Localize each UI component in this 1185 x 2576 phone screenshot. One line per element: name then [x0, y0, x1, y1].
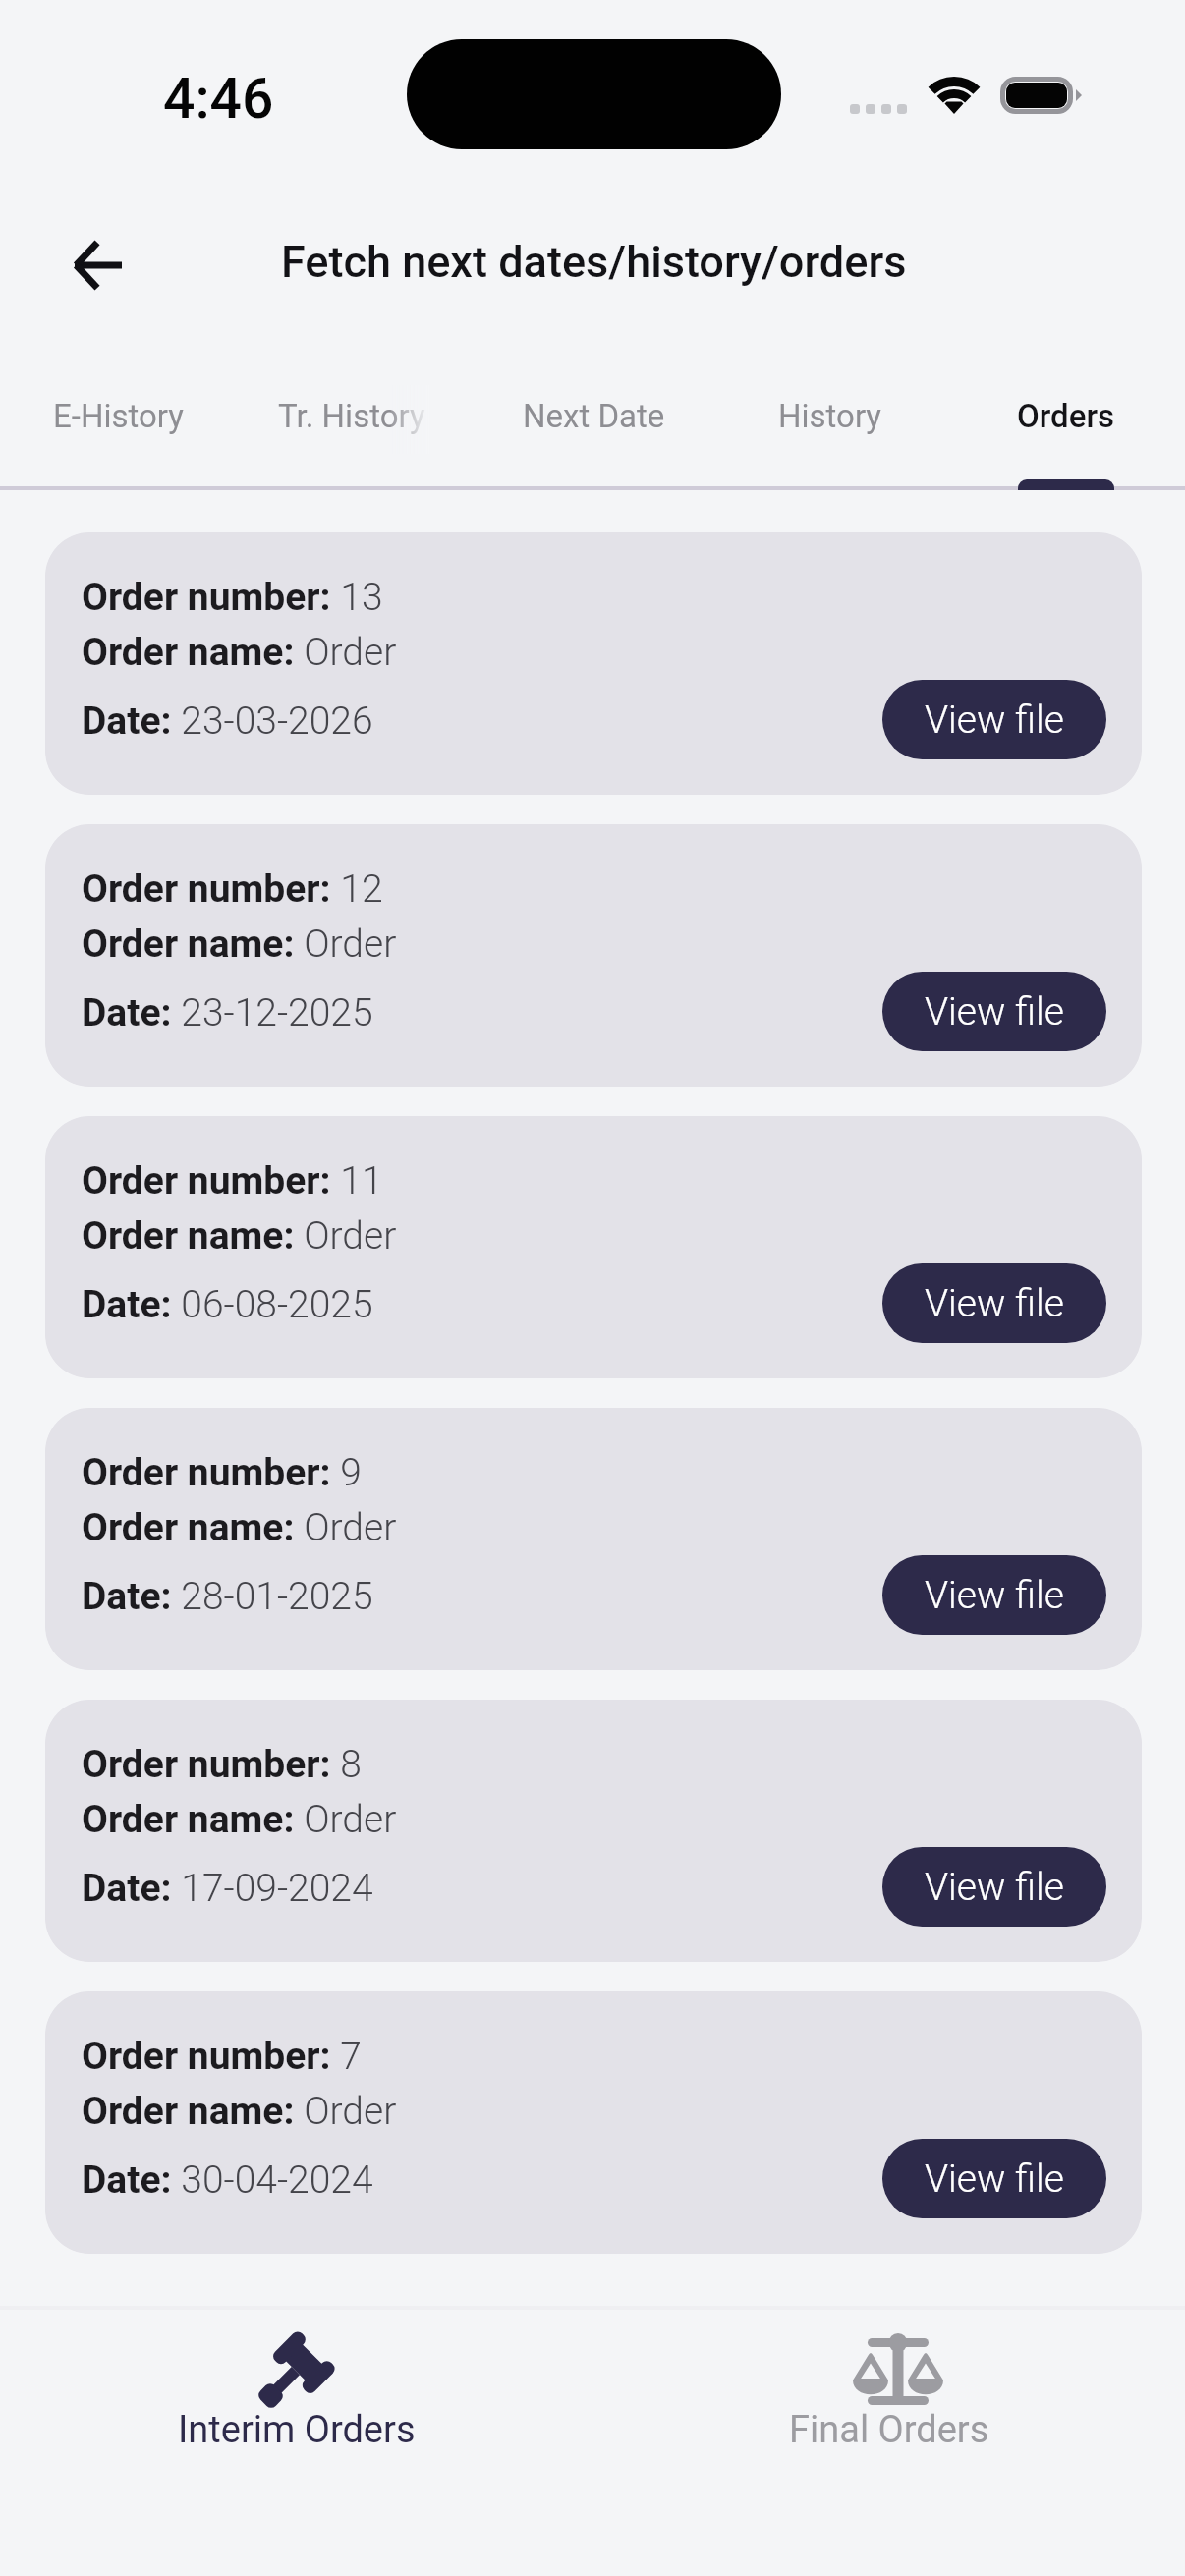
button[interactable]: Order number: 9: [45, 1408, 1142, 1670]
staticText: Order name: Order: [82, 1505, 397, 1550]
button[interactable]: View file: [882, 1263, 1106, 1343]
staticText: Order name: Order: [82, 2089, 397, 2134]
button[interactable]: E-History: [10, 346, 226, 485]
staticText: 4:46: [163, 66, 274, 132]
staticText: History: [778, 397, 881, 435]
staticText: Order number: 12: [82, 867, 383, 912]
staticText: Next Date: [523, 397, 665, 435]
staticText: Interim Orders: [178, 2408, 416, 2452]
button[interactable]: Next Date: [485, 346, 702, 485]
staticText: Date: 30-04-2024: [82, 2157, 373, 2203]
staticText: Order name: Order: [82, 1213, 397, 1259]
button[interactable]: Order number: 12: [45, 824, 1142, 1087]
button[interactable]: View file: [882, 972, 1106, 1051]
staticText: Final Orders: [789, 2408, 989, 2452]
staticText: Date: 23-03-2026: [82, 699, 373, 744]
staticText: View file: [925, 1281, 1064, 1326]
button[interactable]: Back: [53, 221, 141, 309]
button[interactable]: Interim Orders: [140, 2311, 454, 2468]
staticText: Order number: 11: [82, 1158, 383, 1204]
staticText: Date: 28-01-2025: [82, 1574, 373, 1619]
button[interactable]: Order number: 8: [45, 1700, 1142, 1962]
staticText: Date: 17-09-2024: [82, 1866, 373, 1911]
button[interactable]: History: [721, 346, 937, 485]
staticText: Order name: Order: [82, 922, 397, 967]
button[interactable]: View file: [882, 1847, 1106, 1927]
button[interactable]: Order number: 13: [45, 532, 1142, 795]
staticText: Order number: 13: [82, 575, 383, 620]
button[interactable]: View file: [882, 2139, 1106, 2218]
staticText: View file: [925, 1573, 1064, 1618]
button[interactable]: Order number: 11: [45, 1116, 1142, 1378]
staticText: Order number: 7: [82, 2034, 362, 2079]
button[interactable]: Orders: [958, 346, 1174, 485]
staticText: Fetch next dates/history/orders: [281, 236, 907, 288]
staticText: Order number: 8: [82, 1742, 362, 1787]
button[interactable]: Order number: 7: [45, 1991, 1142, 2254]
staticText: Date: 06-08-2025: [82, 1282, 373, 1327]
staticText: View file: [925, 2156, 1064, 2202]
staticText: Order name: Order: [82, 630, 397, 675]
staticText: Orders: [1017, 397, 1115, 435]
staticText: E-History: [53, 397, 184, 435]
button[interactable]: View file: [882, 1555, 1106, 1635]
staticText: Tr. History: [278, 397, 425, 435]
button[interactable]: Final Orders: [732, 2311, 1046, 2468]
staticText: Date: 23-12-2025: [82, 990, 373, 1036]
staticText: Order number: 9: [82, 1450, 362, 1495]
staticText: Order name: Order: [82, 1797, 397, 1842]
button[interactable]: View file: [882, 680, 1106, 759]
button[interactable]: Tr. History: [244, 346, 460, 485]
staticText: View file: [925, 989, 1064, 1035]
staticText: View file: [925, 1865, 1064, 1910]
staticText: View file: [925, 698, 1064, 743]
